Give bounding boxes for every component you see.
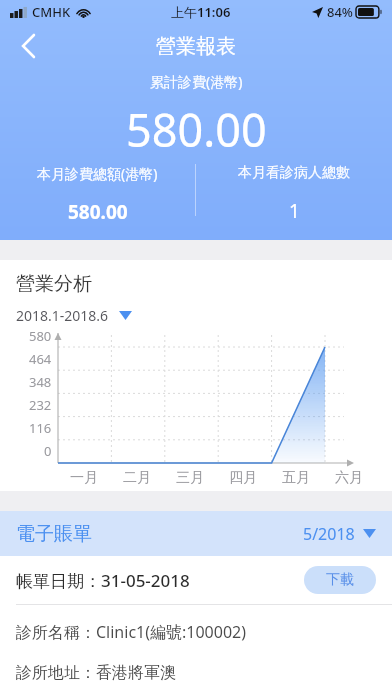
staticText: 116	[29, 419, 52, 437]
staticText: 五月	[282, 469, 310, 487]
staticText: 2018.1-2018.6	[16, 306, 109, 325]
staticText: 診所名稱：Clinic1(編號:100002)	[16, 621, 247, 643]
staticText: 三月	[176, 469, 204, 487]
staticText: 四月	[229, 469, 257, 487]
staticText: 5/2018	[303, 523, 355, 545]
button[interactable]: 本月診費總額(港幣)	[0, 164, 195, 225]
staticText: 帳單日期：31-05-2018	[16, 569, 190, 592]
staticText: 上午11:06	[171, 3, 231, 21]
staticText: 電子賬單	[16, 522, 92, 546]
staticText: 營業報表	[156, 34, 236, 59]
staticText: 累計診費(港幣)	[150, 72, 243, 91]
staticText: 580	[29, 327, 52, 345]
staticText: 本月看診病人總數	[238, 164, 350, 182]
button[interactable]: 2018.1-2018.6	[16, 306, 132, 325]
staticText: 84%	[327, 3, 353, 21]
staticText: 本月診費總額(港幣)	[37, 164, 158, 183]
staticText: 一月	[70, 469, 98, 487]
staticText: CMHK	[32, 3, 71, 21]
staticText: 232	[29, 396, 52, 414]
staticText: 六月	[335, 469, 363, 487]
staticText: 348	[29, 373, 52, 391]
staticText: 580.00	[68, 199, 128, 225]
button[interactable]: 下載	[304, 566, 376, 594]
staticText: 464	[29, 350, 52, 368]
staticText: 580.00	[126, 99, 267, 160]
staticText: 二月	[123, 469, 151, 487]
staticText: 0	[44, 442, 52, 460]
button[interactable]: 電子賬單	[0, 511, 392, 556]
staticText: 診所地址：香港將軍澳	[16, 663, 176, 683]
staticText: 營業分析	[16, 272, 92, 296]
staticText: 下載	[326, 571, 354, 589]
button[interactable]: Back	[8, 26, 48, 66]
button[interactable]: 本月看診病人總數	[196, 164, 392, 224]
staticText: 1	[289, 198, 300, 224]
